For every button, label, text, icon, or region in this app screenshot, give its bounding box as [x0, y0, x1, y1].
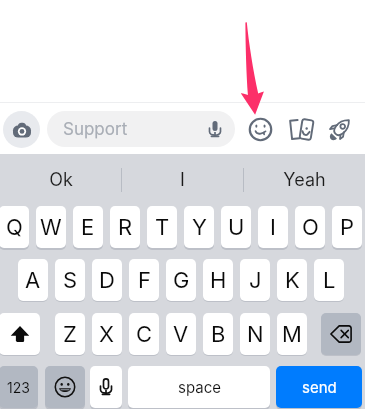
button[interactable]: L [314, 259, 344, 301]
button[interactable]: Yeah [244, 154, 365, 205]
button[interactable]: A [18, 259, 48, 301]
button[interactable]: Voice input [200, 114, 230, 144]
staticText: R [118, 214, 133, 241]
button[interactable]: F [129, 259, 159, 301]
staticText: C [136, 321, 153, 348]
button[interactable]: send [276, 366, 362, 408]
staticText: 123 [7, 379, 30, 396]
staticText: W [40, 214, 62, 241]
button[interactable]: O [295, 206, 325, 248]
staticText: N [247, 321, 264, 348]
button[interactable]: Backspace [321, 313, 361, 355]
button[interactable]: 123 [0, 366, 38, 408]
staticText: X [99, 321, 115, 348]
button[interactable]: N [240, 313, 270, 355]
staticText: Ok [49, 169, 73, 191]
staticText: Y [192, 214, 207, 241]
staticText: U [228, 214, 245, 241]
button[interactable]: J [240, 259, 270, 301]
button[interactable]: Ok [0, 154, 121, 205]
staticText: G [173, 267, 190, 294]
button[interactable]: Emoji [245, 114, 276, 145]
button[interactable]: Q [0, 206, 29, 248]
button[interactable]: space [128, 366, 270, 408]
staticText: F [138, 267, 151, 294]
staticText: O [302, 214, 319, 241]
button[interactable]: X [92, 313, 122, 355]
button[interactable]: W [36, 206, 66, 248]
button[interactable]: Camera [3, 111, 40, 148]
button[interactable]: G [166, 259, 196, 301]
button[interactable]: H [203, 259, 233, 301]
button[interactable]: T [147, 206, 177, 248]
button[interactable]: U [221, 206, 251, 248]
staticText: E [81, 214, 95, 241]
staticText: I [270, 214, 276, 241]
button[interactable]: Z [55, 313, 85, 355]
staticText: P [340, 214, 355, 241]
button[interactable]: I [258, 206, 288, 248]
staticText: A [25, 267, 41, 294]
staticText: Support [63, 119, 128, 140]
staticText: M [282, 321, 302, 348]
staticText: V [173, 321, 189, 348]
staticText: Q [6, 214, 23, 241]
button[interactable]: S [55, 259, 85, 301]
button[interactable]: Shift [0, 313, 40, 355]
button[interactable]: K [277, 259, 307, 301]
button[interactable]: R [110, 206, 140, 248]
button[interactable]: Support [47, 111, 235, 147]
button[interactable]: Emoji keyboard [45, 366, 85, 408]
staticText: J [249, 267, 262, 294]
button[interactable]: C [129, 313, 159, 355]
staticText: L [323, 267, 336, 294]
staticText: space [178, 378, 221, 396]
staticText: T [155, 214, 170, 241]
button[interactable]: Send effect [324, 114, 355, 145]
button[interactable]: Stickers [286, 114, 317, 145]
staticText: I [180, 169, 185, 191]
staticText: Yeah [283, 169, 326, 191]
staticText: H [210, 267, 227, 294]
button[interactable]: M [277, 313, 307, 355]
button[interactable]: Y [184, 206, 214, 248]
staticText: D [99, 267, 115, 294]
button[interactable]: P [332, 206, 362, 248]
button[interactable]: B [203, 313, 233, 355]
staticText: K [285, 267, 300, 294]
button[interactable]: I [122, 154, 243, 205]
staticText: Z [63, 321, 77, 348]
button[interactable]: V [166, 313, 196, 355]
button[interactable]: Dictation [90, 366, 122, 408]
staticText: send [302, 378, 337, 396]
staticText: S [63, 267, 78, 294]
button[interactable]: D [92, 259, 122, 301]
staticText: B [211, 321, 226, 348]
button[interactable]: E [73, 206, 103, 248]
